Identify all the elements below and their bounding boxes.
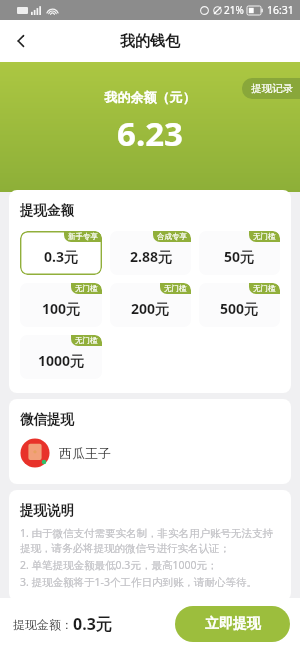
staticText: 6.23 (0, 111, 300, 156)
staticText: 提现金额 (20, 202, 74, 219)
staticText: 1000元 (38, 351, 85, 370)
staticText: 合成专享 (157, 232, 187, 241)
staticText: 0.3元 (73, 613, 112, 635)
staticText: 21% (224, 3, 244, 17)
staticText: 0.3元 (44, 247, 78, 266)
button[interactable]: 提现记录 (242, 78, 300, 99)
staticText: 我的余额（元） (0, 89, 300, 105)
button[interactable]: 新手专享 (20, 231, 102, 275)
button[interactable]: Back (0, 20, 42, 62)
staticText: 提现记录 (251, 82, 293, 95)
staticText: 提现说明 (20, 502, 74, 519)
staticText: 无门槛 (253, 232, 276, 241)
button[interactable]: 合成专享 (110, 231, 191, 275)
staticText: 新手专享 (68, 232, 98, 241)
button[interactable]: 无门槛 (110, 283, 191, 327)
staticText: 100元 (42, 299, 81, 318)
staticText: 500元 (220, 299, 259, 318)
button[interactable]: 无门槛 (20, 283, 102, 327)
staticText: 无门槛 (75, 336, 98, 345)
staticText: 2.88元 (130, 247, 172, 266)
staticText: 200元 (131, 299, 170, 318)
staticText: 16:31 (267, 3, 294, 17)
staticText: 无门槛 (164, 284, 187, 293)
staticText: 1. 由于微信支付需要实名制，非实名用户账号无法支持提现，请务必将提现的微信号进… (20, 526, 280, 555)
staticText: 无门槛 (75, 284, 98, 293)
staticText: 立即提现 (205, 615, 261, 633)
staticText: 微信提现 (20, 411, 74, 428)
staticText: 3. 提现金额将于1-3个工作日内到账，请耐心等待。 (20, 575, 257, 589)
button[interactable]: 西瓜王子 (20, 438, 280, 468)
staticText: 50元 (224, 247, 255, 266)
button[interactable]: 立即提现 (175, 606, 290, 642)
staticText: 2. 单笔提现金额最低0.3元，最高1000元； (20, 558, 218, 572)
button[interactable]: 无门槛 (199, 283, 280, 327)
staticText: 无门槛 (253, 284, 276, 293)
staticText: 西瓜王子 (59, 445, 111, 461)
staticText: 我的钱包 (120, 32, 180, 51)
staticText: 提现金额： (13, 617, 73, 632)
button[interactable]: 无门槛 (20, 335, 102, 379)
button[interactable]: 无门槛 (199, 231, 280, 275)
